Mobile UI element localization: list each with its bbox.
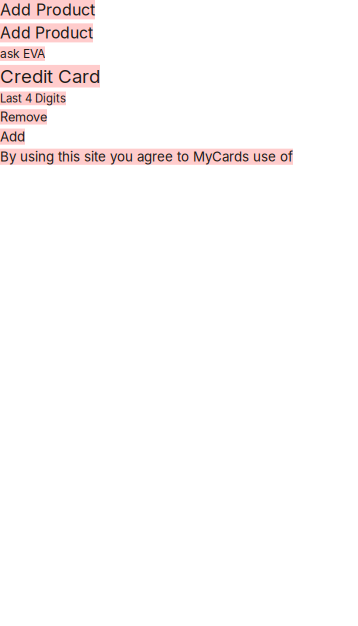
staticText: Last 4 Digits bbox=[0, 91, 66, 105]
staticText: Remove bbox=[0, 109, 47, 124]
staticText: ask EVA bbox=[0, 46, 45, 61]
staticText: Add Product bbox=[0, 0, 95, 19]
staticText: Add bbox=[0, 128, 25, 145]
staticText: Add Product bbox=[0, 23, 93, 42]
staticText: Credit Card bbox=[0, 65, 100, 87]
staticText: By using this site you agree to MyCards … bbox=[0, 149, 293, 165]
